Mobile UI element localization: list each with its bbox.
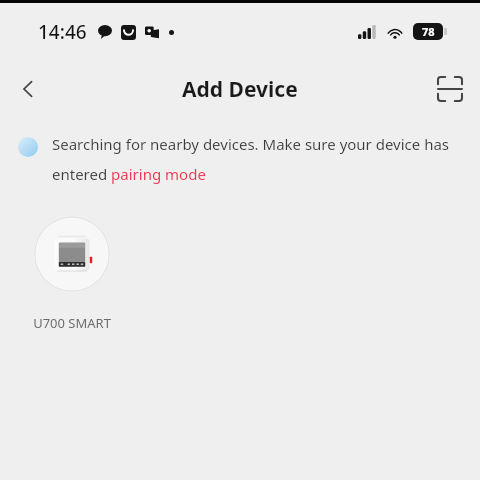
button[interactable]: U700 SMART	[24, 216, 120, 332]
staticText: 14:46	[38, 19, 87, 45]
button[interactable]: Scan QR code	[428, 67, 472, 111]
button[interactable]: Back	[6, 67, 50, 111]
staticText: U700 SMART	[33, 314, 111, 332]
staticText: Add Device	[182, 75, 298, 104]
staticText: 78	[422, 24, 435, 39]
staticText: Searching for nearby devices. Make sure …	[52, 134, 452, 184]
